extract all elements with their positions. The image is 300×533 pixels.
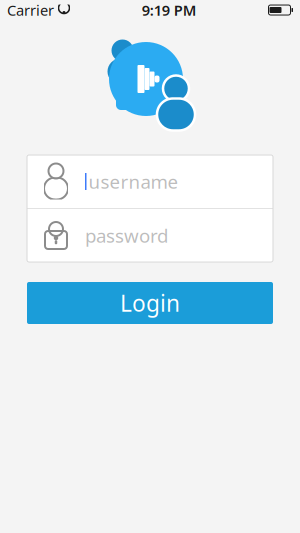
staticText: 9:19 PM <box>142 0 197 20</box>
button[interactable]: username <box>27 155 273 208</box>
staticText: Carrier <box>7 0 54 20</box>
button[interactable]: Login <box>27 282 273 324</box>
staticText: Login <box>120 288 180 318</box>
staticText: password <box>85 223 168 248</box>
button[interactable]: password <box>27 209 273 262</box>
staticText: username <box>88 169 178 194</box>
